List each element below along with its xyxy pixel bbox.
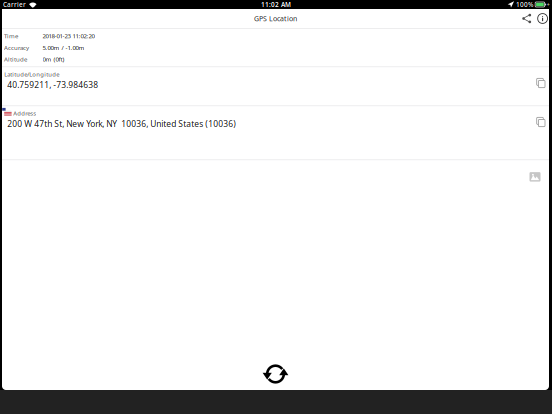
staticText: Carrier [3,0,26,9]
staticText: 100% [516,0,533,9]
staticText: + [546,0,549,8]
button[interactable]: Refresh [249,347,301,390]
staticText: 0m (0ft) [43,55,65,63]
staticText: Address [13,109,36,117]
staticText: 200 W 47th St, New York, NY 10036, Unite… [7,118,236,129]
staticText: Altitude [4,55,27,63]
button[interactable]: Copy coordinates [537,68,549,88]
staticText: Latitude/Longitude [4,70,59,78]
button[interactable]: Copy address [537,107,549,127]
staticText: 5.00m / -1.00m [43,43,85,52]
button[interactable]: Share [520,14,533,23]
staticText: GPS Location [254,14,297,23]
staticText: Accuracy [4,43,29,52]
button[interactable]: Info [533,14,547,23]
staticText: 11:02 AM [261,0,291,9]
staticText: Time [4,32,18,40]
staticText: 2018-01-23 11:02:20 [43,32,95,40]
staticText: 40.759211, -73.984638 [7,79,98,90]
